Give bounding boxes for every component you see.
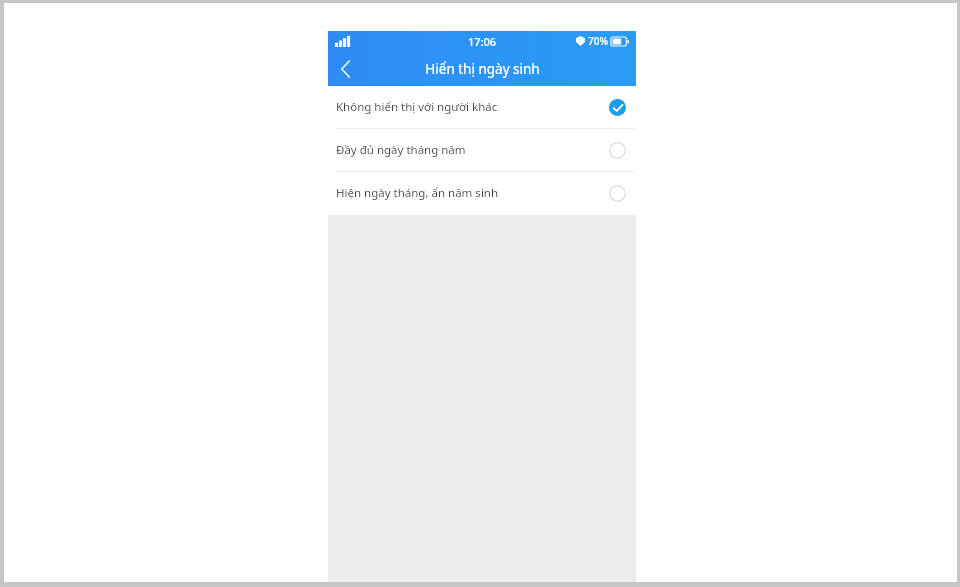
staticText: 17:06 bbox=[468, 34, 497, 49]
button[interactable]: Đầy đủ ngày tháng năm bbox=[328, 129, 636, 171]
button[interactable]: Back bbox=[328, 52, 362, 86]
staticText: Hiện ngày tháng, ẩn năm sinh bbox=[336, 185, 609, 201]
staticText: 70% bbox=[588, 34, 608, 48]
staticText: Đầy đủ ngày tháng năm bbox=[336, 142, 609, 158]
button[interactable]: Hiện ngày tháng, ẩn năm sinh bbox=[328, 172, 636, 214]
staticText: Hiển thị ngày sinh bbox=[425, 60, 540, 78]
button[interactable]: Không hiển thị với người khác bbox=[328, 86, 636, 128]
staticText: Không hiển thị với người khác bbox=[336, 99, 609, 115]
